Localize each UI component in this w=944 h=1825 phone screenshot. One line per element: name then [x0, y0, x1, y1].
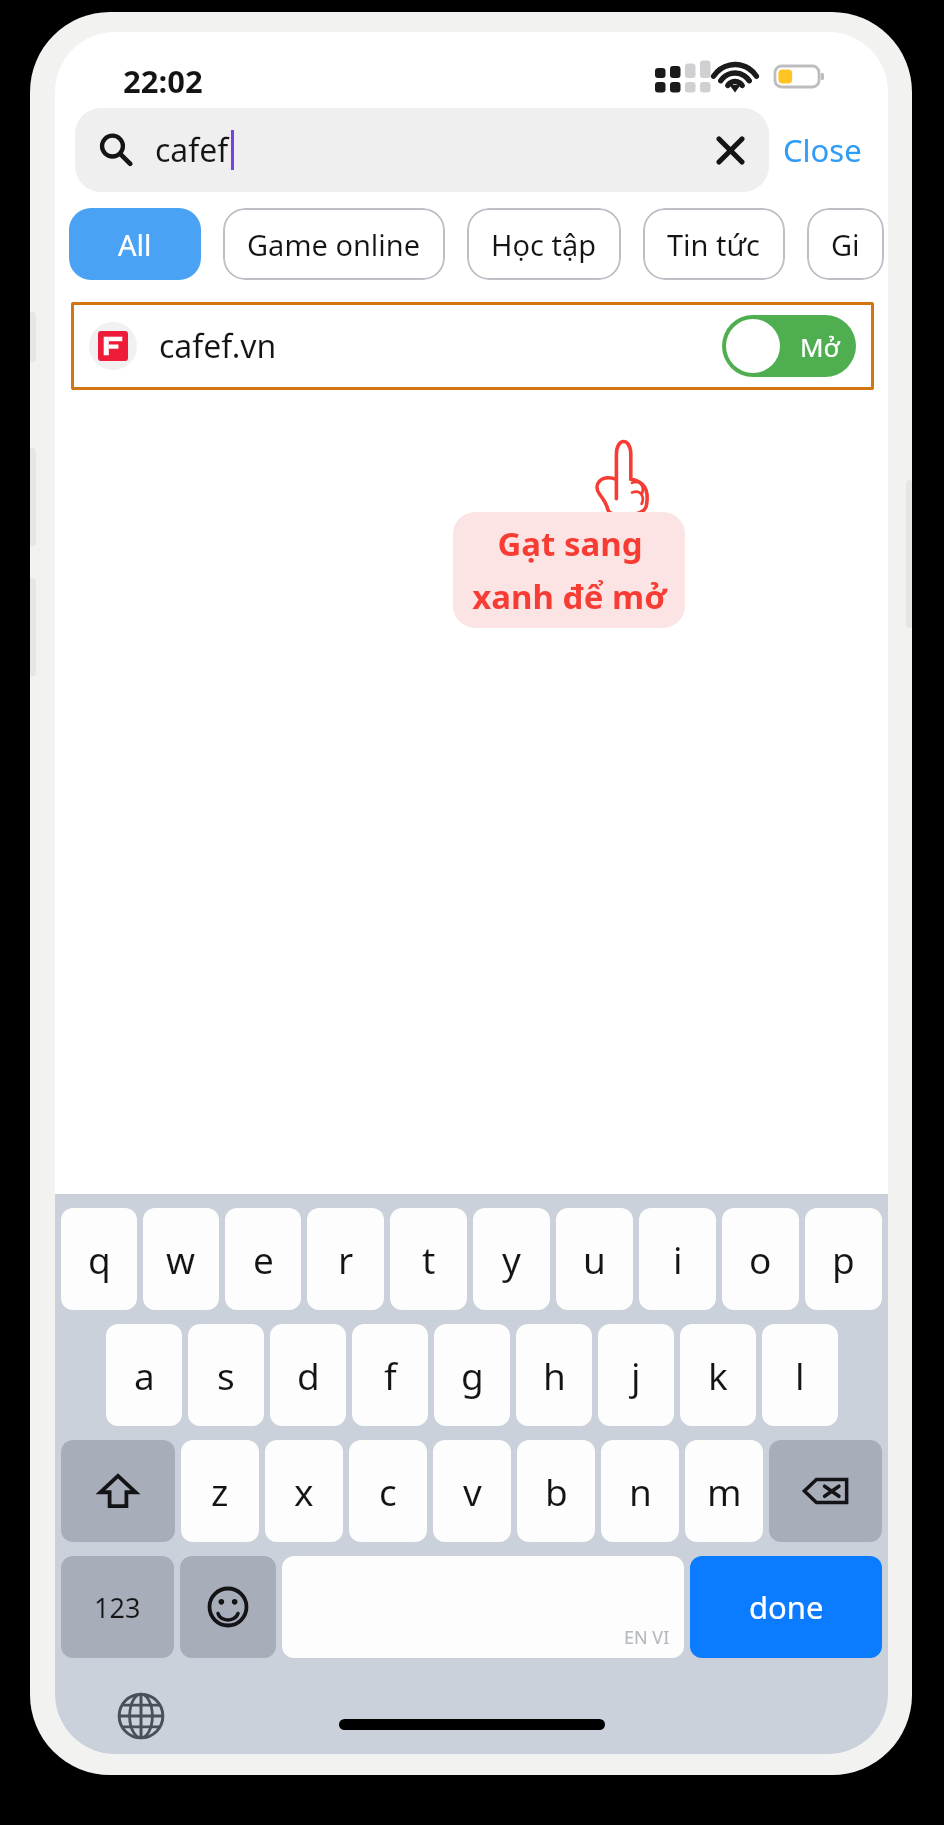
staticText: xanh để mở: [472, 574, 667, 619]
staticText: 22:02: [123, 60, 203, 102]
staticText: j: [631, 1350, 641, 1400]
staticText: EN VI: [624, 1625, 670, 1650]
button[interactable]: All: [69, 208, 201, 280]
staticText: b: [545, 1466, 568, 1516]
staticText: l: [795, 1350, 805, 1400]
staticText: i: [673, 1234, 683, 1284]
button[interactable]: Tin tức: [643, 208, 785, 280]
button[interactable]: e: [225, 1208, 301, 1310]
button[interactable]: k: [680, 1324, 756, 1426]
button[interactable]: m: [685, 1440, 763, 1542]
button[interactable]: cafef: [75, 108, 769, 192]
button[interactable]: i: [639, 1208, 716, 1310]
staticText: a: [134, 1350, 155, 1400]
button[interactable]: h: [516, 1324, 592, 1426]
button[interactable]: Close: [769, 117, 876, 183]
button[interactable]: Shift: [61, 1440, 175, 1542]
staticText: 123: [94, 1589, 141, 1626]
staticText: p: [832, 1234, 855, 1284]
button[interactable]: Gi: [807, 208, 884, 280]
staticText: s: [217, 1350, 235, 1400]
staticText: d: [297, 1350, 320, 1400]
staticText: All: [118, 225, 152, 264]
button[interactable]: x: [265, 1440, 343, 1542]
staticText: k: [708, 1350, 728, 1400]
button[interactable]: z: [181, 1440, 259, 1542]
button[interactable]: cafef.vn: [71, 302, 874, 390]
button[interactable]: d: [270, 1324, 346, 1426]
staticText: Học tập: [491, 225, 597, 264]
staticText: r: [338, 1234, 354, 1284]
button[interactable]: a: [106, 1324, 182, 1426]
staticText: g: [461, 1350, 484, 1400]
staticText: c: [379, 1466, 397, 1516]
button[interactable]: Space: [282, 1556, 684, 1658]
button[interactable]: o: [722, 1208, 799, 1310]
staticText: y: [502, 1234, 521, 1284]
button[interactable]: 123: [61, 1556, 174, 1658]
staticText: Gi: [831, 225, 860, 264]
button[interactable]: Switch keyboard language: [113, 1688, 169, 1744]
button[interactable]: j: [598, 1324, 674, 1426]
button[interactable]: w: [143, 1208, 219, 1310]
button[interactable]: v: [433, 1440, 511, 1542]
button[interactable]: Backspace: [769, 1440, 882, 1542]
staticText: o: [749, 1234, 772, 1284]
button[interactable]: p: [805, 1208, 882, 1310]
staticText: t: [422, 1234, 436, 1284]
staticText: done: [749, 1586, 824, 1628]
button[interactable]: Game online: [223, 208, 445, 280]
button[interactable]: done: [690, 1556, 882, 1658]
button[interactable]: l: [762, 1324, 838, 1426]
button[interactable]: f: [352, 1324, 428, 1426]
staticText: n: [629, 1466, 652, 1516]
button[interactable]: c: [349, 1440, 427, 1542]
button[interactable]: r: [307, 1208, 384, 1310]
staticText: v: [463, 1466, 482, 1516]
staticText: e: [253, 1234, 274, 1284]
button[interactable]: y: [473, 1208, 550, 1310]
staticText: cafef: [155, 128, 229, 172]
button[interactable]: t: [390, 1208, 467, 1310]
staticText: Mở: [800, 329, 840, 364]
button[interactable]: Toggle site open: [722, 315, 856, 377]
staticText: Game online: [247, 225, 421, 264]
button[interactable]: u: [556, 1208, 633, 1310]
staticText: u: [583, 1234, 606, 1284]
staticText: h: [543, 1350, 566, 1400]
staticText: Gạt sang: [497, 521, 643, 566]
button[interactable]: Học tập: [467, 208, 621, 280]
staticText: x: [294, 1466, 314, 1516]
button[interactable]: Emoji: [180, 1556, 276, 1658]
button[interactable]: s: [188, 1324, 264, 1426]
button[interactable]: q: [61, 1208, 137, 1310]
button[interactable]: b: [517, 1440, 595, 1542]
button[interactable]: Clear search: [707, 127, 753, 173]
staticText: m: [707, 1466, 742, 1516]
staticText: Close: [783, 129, 862, 171]
staticText: z: [211, 1466, 229, 1516]
staticText: q: [88, 1234, 111, 1284]
staticText: Tin tức: [667, 225, 761, 264]
staticText: f: [384, 1350, 397, 1400]
staticText: w: [166, 1234, 196, 1284]
button[interactable]: n: [601, 1440, 679, 1542]
staticText: cafef.vn: [159, 324, 277, 368]
button[interactable]: g: [434, 1324, 510, 1426]
